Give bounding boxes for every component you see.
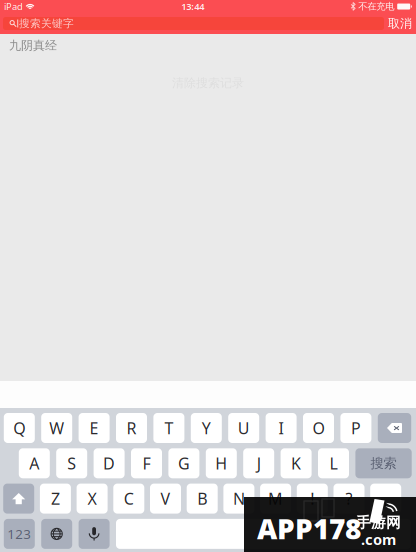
button[interactable]: N <box>223 484 254 514</box>
staticText: 九阴真经 <box>9 38 57 53</box>
staticText: U <box>238 417 250 439</box>
staticText: 搜索 <box>370 455 396 471</box>
button[interactable]: Delete <box>378 413 411 443</box>
button[interactable]: A <box>19 448 50 478</box>
button[interactable]: Y <box>191 413 222 443</box>
staticText: Q <box>13 417 25 439</box>
staticText: ! <box>310 488 314 509</box>
staticText: O <box>312 417 324 439</box>
staticText: C <box>124 488 134 509</box>
button[interactable]: W <box>41 413 72 443</box>
staticText: 搜索关键字 <box>19 17 74 30</box>
staticText: H <box>215 453 227 474</box>
staticText: APP178 <box>257 510 361 547</box>
staticText: E <box>90 417 99 439</box>
staticText: F <box>142 453 150 474</box>
button[interactable]: M <box>260 484 291 514</box>
staticText: T <box>164 417 173 439</box>
staticText: Z <box>51 488 60 509</box>
staticText: K <box>291 453 301 474</box>
staticText: X <box>88 488 97 509</box>
staticText: ? <box>345 488 352 509</box>
button[interactable]: F <box>131 448 162 478</box>
staticText: R <box>126 417 136 439</box>
staticText: , <box>384 488 388 509</box>
staticText: I <box>279 417 284 439</box>
button[interactable]: 取消 <box>388 13 412 34</box>
button[interactable]: D <box>94 448 125 478</box>
button[interactable]: ? <box>333 484 364 514</box>
button[interactable]: O <box>303 413 334 443</box>
staticText: P <box>351 417 361 439</box>
button[interactable]: 搜索 <box>355 448 412 478</box>
staticText: G <box>178 453 190 474</box>
button[interactable]: V <box>150 484 181 514</box>
staticText: W <box>49 417 64 439</box>
button[interactable]: Shift <box>3 484 34 514</box>
staticText: A <box>29 453 39 474</box>
button[interactable]: S <box>56 448 87 478</box>
button[interactable]: P <box>340 413 371 443</box>
staticText: 手游网 <box>356 513 401 531</box>
staticText: V <box>160 488 170 509</box>
staticText: L <box>329 453 337 474</box>
staticText: .com <box>361 529 396 549</box>
staticText: S <box>67 453 76 474</box>
staticText: J <box>257 453 261 474</box>
button[interactable]: 123 <box>4 519 35 549</box>
button[interactable]: G <box>168 448 199 478</box>
staticText: D <box>103 453 115 474</box>
button[interactable]: B <box>187 484 218 514</box>
button[interactable]: L <box>318 448 349 478</box>
button[interactable]: J <box>243 448 274 478</box>
staticText: N <box>233 488 245 509</box>
button[interactable]: , <box>370 484 401 514</box>
button[interactable]: Q <box>4 413 35 443</box>
staticText: 不在充电 <box>358 1 394 12</box>
staticText: Y <box>202 417 211 439</box>
button[interactable]: I <box>266 413 297 443</box>
button[interactable]: E <box>79 413 110 443</box>
staticText: B <box>197 488 207 509</box>
staticText: 13:44 <box>181 0 204 13</box>
button[interactable]: ! <box>297 484 328 514</box>
button[interactable]: H <box>206 448 237 478</box>
button[interactable]: C <box>113 484 144 514</box>
button[interactable]: X <box>77 484 108 514</box>
staticText: 取消 <box>388 16 412 31</box>
button[interactable]: K <box>281 448 312 478</box>
button[interactable]: Z <box>40 484 71 514</box>
staticText: M <box>268 488 283 509</box>
button[interactable]: space <box>116 519 411 549</box>
button[interactable]: Dictation <box>79 519 110 549</box>
button[interactable]: T <box>153 413 184 443</box>
button[interactable]: 九阴真经 <box>0 34 416 57</box>
staticText: 123 <box>7 525 31 543</box>
button[interactable]: Next keyboard <box>41 519 72 549</box>
button[interactable]: U <box>228 413 259 443</box>
button[interactable]: R <box>116 413 147 443</box>
staticText: 清除搜索记录 <box>172 76 244 90</box>
staticText: iPad <box>4 0 23 13</box>
